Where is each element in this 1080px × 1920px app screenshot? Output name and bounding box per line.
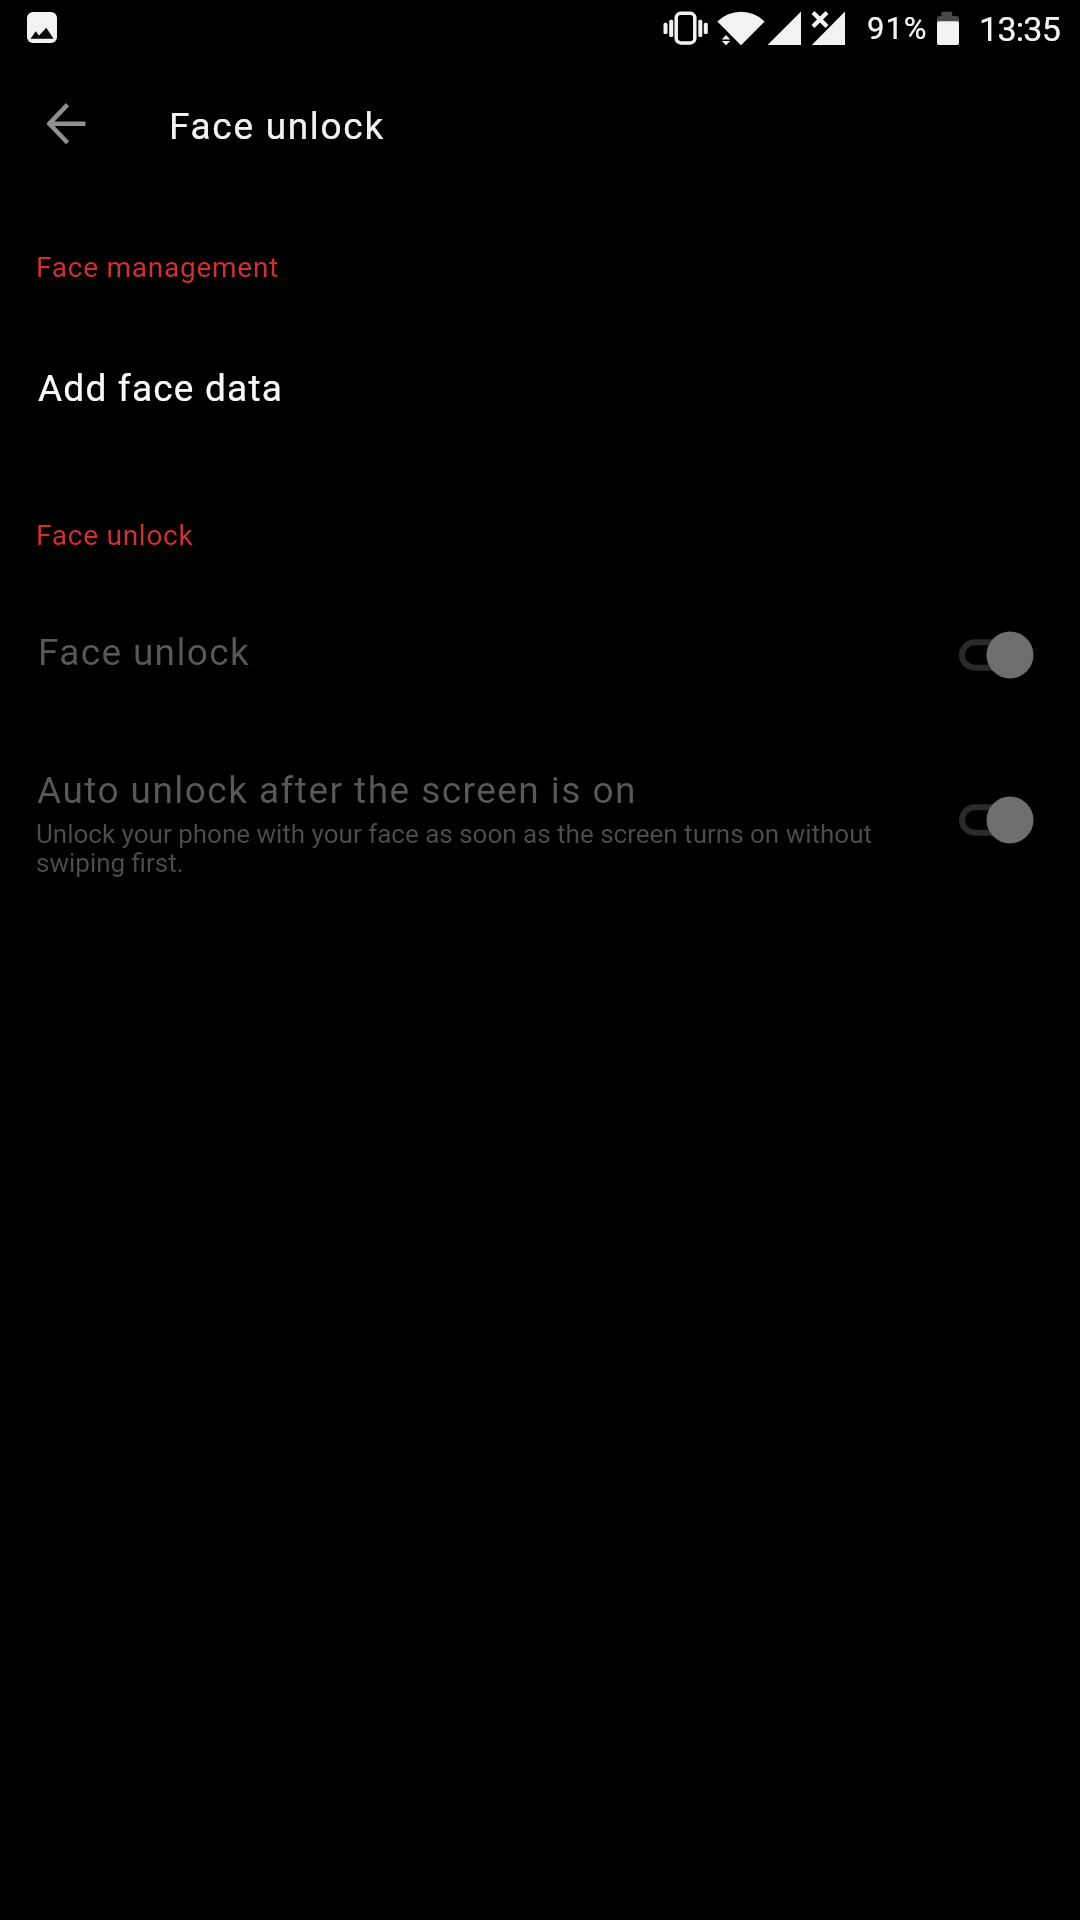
staticText: swiping first. xyxy=(36,848,184,878)
staticText: Add face data xyxy=(38,367,284,410)
staticText: Face unlock xyxy=(169,105,385,148)
button[interactable] xyxy=(0,608,1080,702)
button[interactable] xyxy=(0,340,1080,436)
staticText: Unlock your phone with your face as soon… xyxy=(36,819,872,849)
staticText: Face unlock xyxy=(36,519,194,552)
staticText: Auto unlock after the screen is on xyxy=(37,769,637,812)
staticText: Face management xyxy=(36,251,280,284)
staticText: Face unlock xyxy=(38,631,251,674)
staticText: 91% xyxy=(867,10,928,46)
button[interactable] xyxy=(37,93,97,153)
staticText: 13:35 xyxy=(979,9,1061,49)
button[interactable] xyxy=(0,748,1080,888)
